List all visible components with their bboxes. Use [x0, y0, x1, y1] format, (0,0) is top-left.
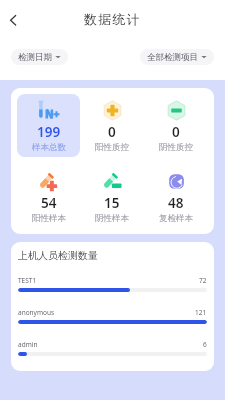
staticText: 阳性质控	[95, 142, 129, 153]
staticText: TEST1	[18, 276, 37, 285]
staticText: 48	[168, 194, 184, 212]
staticText: admin	[18, 340, 38, 349]
staticText: 阴性质控	[159, 142, 193, 153]
staticText: 0	[108, 123, 116, 141]
button[interactable]: 全部检测项目	[140, 49, 214, 65]
staticText: 数据统计	[84, 11, 141, 27]
staticText: 阴性样本	[95, 213, 129, 224]
button[interactable]: Back	[0, 7, 26, 33]
staticText: 6	[203, 340, 207, 349]
button[interactable]: 15	[80, 165, 144, 228]
staticText: 阳性样本	[32, 213, 66, 224]
staticText: 199	[37, 123, 61, 141]
staticText: 54	[41, 194, 57, 212]
staticText: 全部检测项目	[147, 52, 198, 63]
staticText: 121	[195, 308, 207, 317]
button[interactable]: 检测日期	[11, 49, 68, 65]
staticText: 15	[104, 194, 120, 212]
staticText: 0	[172, 123, 180, 141]
staticText: 复检样本	[159, 213, 193, 224]
button[interactable]: 48	[144, 165, 208, 228]
staticText: 72	[199, 276, 207, 285]
staticText: 上机人员检测数量	[18, 249, 98, 262]
button[interactable]: 54	[17, 165, 80, 228]
staticText: 检测日期	[18, 52, 52, 63]
button[interactable]: 0	[80, 94, 144, 157]
staticText: 样本总数	[32, 142, 66, 153]
staticText: anonymous	[18, 308, 55, 317]
button[interactable]: 199	[17, 94, 80, 157]
button[interactable]: 0	[144, 94, 208, 157]
